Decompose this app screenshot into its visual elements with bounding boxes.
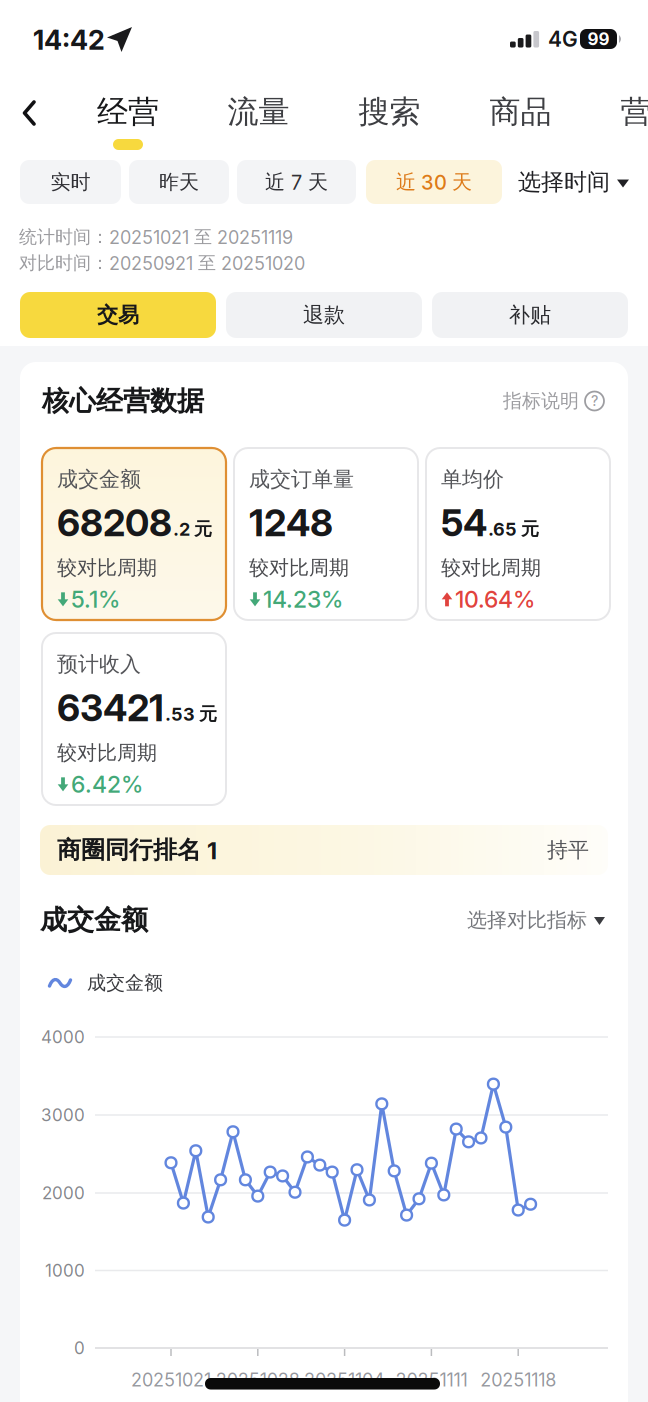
staticText: 流量 [227,92,289,132]
button[interactable]: 预计收入 [42,633,226,805]
staticText: 指标说明 [503,389,579,413]
staticText: 3000 [41,1105,85,1125]
staticText: 6.42% [71,770,143,798]
staticText: 20251111 [395,1369,467,1391]
staticText: 54 [441,500,487,545]
staticText: 99 [587,29,609,49]
staticText: 商品 [489,92,551,132]
staticText: 20251028 [216,1369,300,1391]
staticText: 63421 [57,685,164,730]
button[interactable]: 流量 [198,90,318,134]
staticText: 选择对比指标 [467,907,587,933]
button[interactable]: 搜索 [329,90,449,134]
staticText: 成交金额 [87,971,163,995]
staticText: 较对比周期 [249,555,349,580]
staticText: 20251021 [131,1369,211,1391]
staticText: 预计收入 [57,651,141,677]
staticText: 成交金额 [57,466,141,492]
staticText: 选择时间 [518,167,610,196]
button[interactable]: 昨天 [129,160,229,204]
staticText: 14:42 [33,24,105,56]
button[interactable]: 营销 [591,90,648,134]
staticText: 持平 [547,837,589,863]
staticText: 0 [74,1338,85,1358]
staticText: .53 元 [165,702,217,725]
button[interactable]: 成交金额 [42,448,226,620]
staticText: 营销 [620,92,648,132]
staticText: 较对比周期 [441,555,541,580]
staticText: 退款 [303,302,345,328]
staticText: 搜索 [358,92,420,132]
button[interactable]: 退款 [226,292,422,338]
staticText: 昨天 [159,169,199,195]
staticText: 单均价 [441,466,504,492]
staticText: ? [591,392,598,409]
button[interactable]: 近 7 天 [237,160,356,204]
staticText: 1248 [249,500,333,545]
staticText: 近 30 天 [396,169,472,195]
staticText: 经营 [97,92,159,132]
staticText: 对比时间：20250921 至 20251020 [19,252,305,274]
button[interactable]: 近 30 天 [366,160,502,204]
button[interactable]: 经营 [68,90,188,134]
staticText: 20251118 [480,1369,556,1391]
button[interactable]: 商圈同行排名 1 [40,825,608,875]
staticText: 10.64% [455,585,535,613]
staticText: 4000 [41,1027,85,1047]
button[interactable]: Back [14,92,46,135]
button[interactable]: 指标说明 [503,384,604,418]
staticText: 1000 [45,1260,85,1281]
staticText: .2 元 [173,517,212,540]
staticText: 交易 [97,302,139,328]
staticText: 2000 [42,1183,85,1203]
button[interactable]: 选择时间 [518,160,629,204]
staticText: .65 元 [488,517,539,540]
staticText: 14.23% [263,585,343,613]
button[interactable]: 实时 [20,160,121,204]
staticText: 较对比周期 [57,740,157,765]
staticText: 成交订单量 [249,466,354,492]
staticText: 核心经营数据 [42,384,204,418]
staticText: 补贴 [509,302,551,328]
staticText: 68208 [57,500,172,545]
staticText: 20251104 [304,1369,385,1391]
button[interactable]: 补贴 [432,292,628,338]
button[interactable]: 选择对比指标 [467,903,605,937]
staticText: 实时 [50,169,90,195]
staticText: 成交金额 [40,903,148,937]
button[interactable]: 商品 [460,90,580,134]
button[interactable]: 成交订单量 [234,448,418,620]
staticText: 近 7 天 [265,169,328,195]
staticText: 商圈同行排名 1 [57,835,217,865]
staticText: 较对比周期 [57,555,157,580]
staticText: 4G [548,26,578,52]
staticText: 统计时间：20251021 至 20251119 [19,226,293,248]
staticText: 5.1% [71,585,120,613]
button[interactable]: 单均价 [426,448,610,620]
button[interactable]: 交易 [20,292,216,338]
